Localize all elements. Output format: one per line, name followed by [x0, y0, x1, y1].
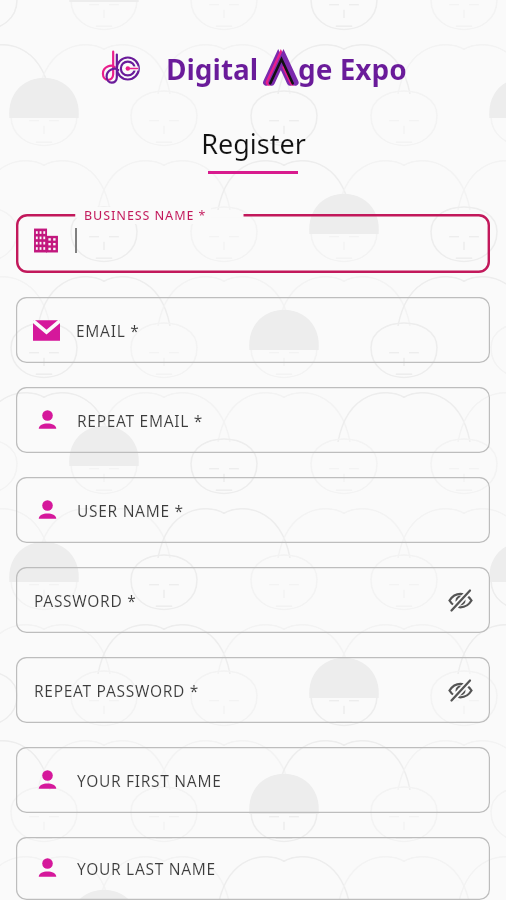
- button[interactable]: EMAIL *: [16, 297, 490, 363]
- staticText: ge Expo: [298, 50, 407, 88]
- staticText: USER NAME *: [77, 500, 184, 521]
- button[interactable]: YOUR LAST NAME: [16, 837, 490, 900]
- button[interactable]: REPEAT EMAIL *: [16, 387, 490, 453]
- button[interactable]: REPEAT PASSWORD *: [16, 657, 490, 723]
- staticText: YOUR LAST NAME: [77, 858, 216, 879]
- button[interactable]: USER NAME *: [16, 477, 490, 543]
- staticText: Digital: [166, 50, 259, 88]
- button[interactable]: YOUR FIRST NAME: [16, 747, 490, 813]
- staticText: REPEAT PASSWORD *: [34, 680, 200, 701]
- staticText: REPEAT EMAIL *: [77, 410, 204, 431]
- staticText: EMAIL *: [76, 320, 140, 341]
- button[interactable]: Show password: [442, 672, 478, 708]
- staticText: Register: [201, 125, 306, 162]
- staticText: YOUR FIRST NAME: [77, 770, 222, 791]
- button[interactable]: Show password: [442, 582, 478, 618]
- staticText: BUSINESS NAME *: [84, 207, 207, 224]
- button[interactable]: BUSINESS NAME *: [16, 207, 490, 273]
- staticText: PASSWORD *: [34, 590, 137, 611]
- button[interactable]: PASSWORD *: [16, 567, 490, 633]
